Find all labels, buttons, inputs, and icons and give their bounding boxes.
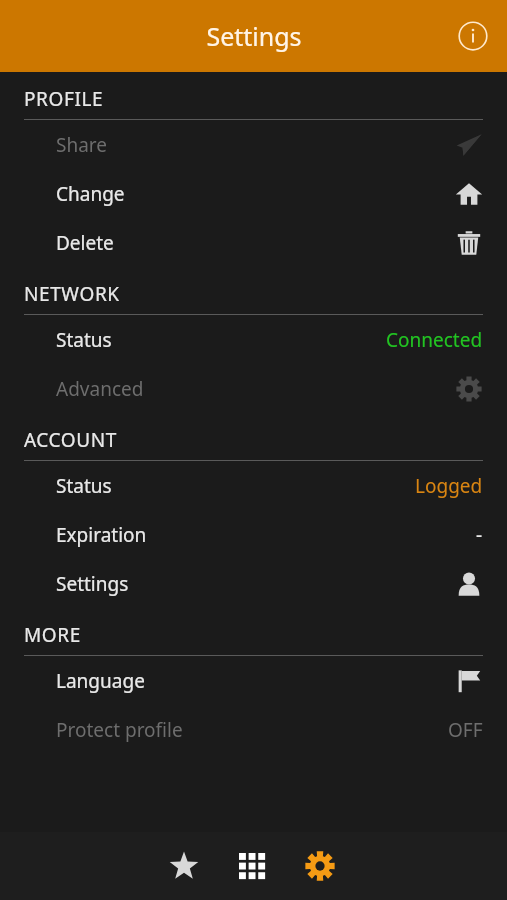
staticText: OFF <box>448 717 483 743</box>
button[interactable]: Apps <box>218 832 286 900</box>
button[interactable]: Info <box>453 16 493 56</box>
staticText: Logged <box>415 473 483 499</box>
other: Share <box>455 131 483 159</box>
staticText: Share <box>56 132 108 158</box>
button[interactable]: Settings <box>0 559 507 608</box>
staticText: NETWORK <box>24 281 120 307</box>
staticText: Connected <box>386 327 483 353</box>
other: Change <box>455 180 483 208</box>
staticText: Expiration <box>56 522 147 548</box>
staticText: Protect profile <box>56 717 183 743</box>
button[interactable]: Favorites <box>150 832 218 900</box>
button[interactable]: Protect profile <box>0 705 507 754</box>
staticText: MORE <box>24 622 81 648</box>
other: Delete <box>455 229 483 257</box>
button[interactable]: Expiration <box>0 510 507 559</box>
button[interactable]: Status <box>0 461 507 510</box>
staticText: ACCOUNT <box>24 427 117 453</box>
staticText: Language <box>56 668 145 694</box>
staticText: Change <box>56 181 125 207</box>
staticText: PROFILE <box>24 86 104 112</box>
button[interactable]: Change <box>0 169 507 218</box>
staticText: Advanced <box>56 376 144 402</box>
other: Account settings <box>455 570 483 598</box>
staticText: Status <box>56 327 112 353</box>
staticText: Delete <box>56 230 114 256</box>
button[interactable]: Status <box>0 315 507 364</box>
button[interactable]: Delete <box>0 218 507 267</box>
staticText: Settings <box>56 571 129 597</box>
button[interactable]: Advanced <box>0 364 507 413</box>
button[interactable]: Share <box>0 120 507 169</box>
button[interactable]: Settings <box>286 832 354 900</box>
button[interactable]: Language <box>0 656 507 705</box>
other: Advanced <box>455 375 483 403</box>
other: Language <box>455 667 483 695</box>
staticText: - <box>476 522 483 548</box>
staticText: Settings <box>206 19 302 53</box>
staticText: Status <box>56 473 112 499</box>
